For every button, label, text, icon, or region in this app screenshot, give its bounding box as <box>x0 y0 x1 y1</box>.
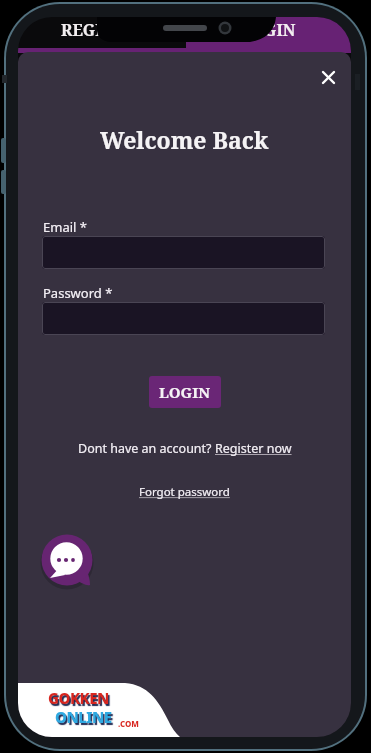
staticText: LOGIN <box>241 19 296 41</box>
button[interactable]: Register now <box>215 440 292 457</box>
staticText: LOGIN <box>159 382 211 402</box>
button[interactable] <box>42 236 325 269</box>
staticText: ONLINE <box>55 707 112 727</box>
button[interactable]: LOGIN <box>186 17 351 43</box>
staticText: Forgot password <box>139 484 230 500</box>
staticText: .COM <box>118 718 139 729</box>
staticText: Email * <box>43 218 87 236</box>
staticText: Register now <box>215 440 292 457</box>
staticText: Password * <box>43 284 113 302</box>
button[interactable] <box>18 17 186 48</box>
staticText: GOKKEN <box>48 688 109 708</box>
staticText: Dont have an account? <box>78 440 215 457</box>
staticText: REGISTER <box>61 19 143 41</box>
button[interactable] <box>314 63 342 91</box>
button[interactable] <box>42 302 325 335</box>
button[interactable]: LOGIN <box>149 376 221 408</box>
button[interactable]: Forgot password <box>139 484 230 500</box>
button[interactable] <box>40 533 94 587</box>
staticText: Welcome Back <box>100 124 269 155</box>
